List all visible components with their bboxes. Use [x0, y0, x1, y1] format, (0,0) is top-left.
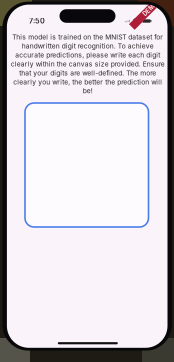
button[interactable]: Drawing canvas	[25, 103, 148, 227]
staticText: This model is trained on the MNIST datas…	[10, 33, 164, 95]
staticText: DEMO	[141, 5, 159, 12]
staticText: 7:50	[29, 17, 45, 25]
